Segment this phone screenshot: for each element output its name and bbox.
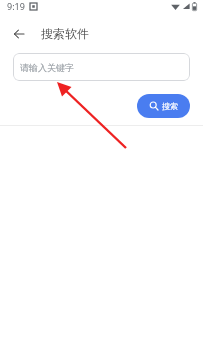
button[interactable]: 请输入关键字: [13, 53, 190, 81]
staticText: 9:19: [7, 0, 25, 12]
staticText: 请输入关键字: [20, 62, 74, 73]
staticText: 搜索软件: [41, 26, 89, 41]
staticText: 搜索: [162, 101, 178, 111]
button[interactable]: Back: [8, 23, 30, 45]
button[interactable]: 搜索: [137, 94, 190, 118]
